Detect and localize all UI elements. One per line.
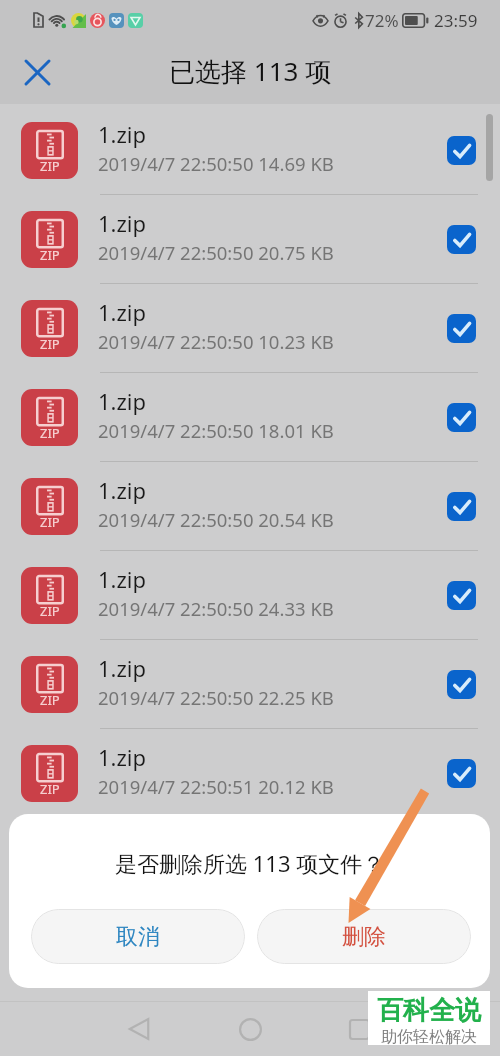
staticText: 1.zip <box>98 475 147 505</box>
staticText: 2019/4/7 22:50:50 20.54 KB <box>98 507 334 532</box>
staticText: 1.zip <box>98 297 147 327</box>
staticText: 2019/4/7 22:50:50 22.25 KB <box>98 685 334 710</box>
staticText: 已选择 113 项 <box>169 53 332 89</box>
button[interactable]: ZIP <box>0 729 500 818</box>
button[interactable]: Selected <box>447 670 476 699</box>
staticText: 1.zip <box>98 119 147 149</box>
staticText: 2019/4/7 22:50:50 14.69 KB <box>98 151 334 176</box>
staticText: 取消 <box>116 923 160 951</box>
button[interactable]: Home <box>226 1005 274 1053</box>
button[interactable]: Selected <box>447 759 476 788</box>
button[interactable]: ZIP <box>0 284 500 373</box>
button[interactable]: Back <box>115 1005 163 1053</box>
button[interactable]: Selected <box>447 225 476 254</box>
button[interactable]: ZIP <box>0 195 500 284</box>
staticText: 2019/4/7 22:50:50 10.23 KB <box>98 329 334 354</box>
staticText: 1.zip <box>98 742 147 772</box>
button[interactable]: Close selection <box>14 49 60 95</box>
button[interactable]: Selected <box>447 492 476 521</box>
button[interactable]: ZIP <box>0 640 500 729</box>
staticText: 删除 <box>342 923 386 951</box>
staticText: 百科全说 <box>377 994 481 1027</box>
staticText: ZIP <box>40 691 60 709</box>
staticText: 23:59 <box>434 9 478 32</box>
staticText: ZIP <box>40 513 60 531</box>
staticText: ZIP <box>40 602 60 620</box>
staticText: 1.zip <box>98 386 147 416</box>
button[interactable]: ZIP <box>0 106 500 195</box>
staticText: 1.zip <box>98 208 147 238</box>
button[interactable]: ZIP <box>0 462 500 551</box>
staticText: 72% <box>365 9 399 32</box>
button[interactable]: ZIP <box>0 551 500 640</box>
staticText: 2019/4/7 22:50:50 20.75 KB <box>98 240 334 265</box>
staticText: 1.zip <box>98 653 147 683</box>
staticText: ZIP <box>40 157 60 175</box>
button[interactable]: ZIP <box>0 373 500 462</box>
staticText: 1.zip <box>98 564 147 594</box>
button[interactable]: Selected <box>447 581 476 610</box>
staticText: ZIP <box>40 424 60 442</box>
staticText: ZIP <box>40 780 60 798</box>
staticText: ZIP <box>40 246 60 264</box>
staticText: ZIP <box>40 335 60 353</box>
staticText: 2019/4/7 22:50:50 24.33 KB <box>98 596 334 621</box>
button[interactable]: Recent apps <box>335 1005 383 1053</box>
button[interactable]: Selected <box>447 403 476 432</box>
staticText: 是否删除所选 113 项文件？ <box>115 848 385 878</box>
button[interactable]: Selected <box>447 136 476 165</box>
button[interactable]: Selected <box>447 314 476 343</box>
staticText: 助你轻松解决 <box>381 1027 477 1045</box>
staticText: 2019/4/7 22:50:50 18.01 KB <box>98 418 334 443</box>
button[interactable]: 删除 <box>257 909 471 964</box>
button[interactable]: 取消 <box>31 909 245 964</box>
staticText: 2019/4/7 22:50:51 20.12 KB <box>98 774 334 799</box>
